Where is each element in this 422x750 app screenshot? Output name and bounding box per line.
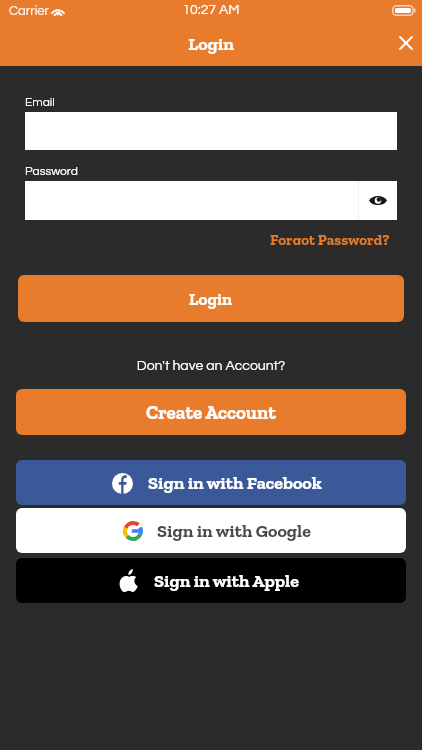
staticText: Sign in with Apple xyxy=(154,570,299,592)
staticText: Password xyxy=(25,165,78,177)
button[interactable]: Forgot Password? xyxy=(270,231,390,245)
button[interactable]: Login xyxy=(18,275,404,322)
staticText: Create Account xyxy=(146,401,276,424)
staticText: Email xyxy=(25,96,55,108)
button[interactable]: Show password xyxy=(359,181,397,220)
staticText: Login xyxy=(189,289,233,309)
button[interactable]: Sign in with Facebook xyxy=(16,460,406,505)
button[interactable]: Create Account xyxy=(16,389,406,435)
staticText: Carrier xyxy=(9,4,50,17)
staticText: Sign in with Facebook xyxy=(148,472,322,494)
button[interactable]: Sign in with Apple xyxy=(16,558,406,603)
staticText: 10:27 AM xyxy=(0,3,422,17)
staticText: Don't have an Account? xyxy=(0,359,422,373)
staticText: Login xyxy=(0,33,422,55)
button[interactable]: Close xyxy=(385,23,422,63)
staticText: Sign in with Google xyxy=(157,520,311,542)
button[interactable]: Sign in with Google xyxy=(16,508,406,553)
